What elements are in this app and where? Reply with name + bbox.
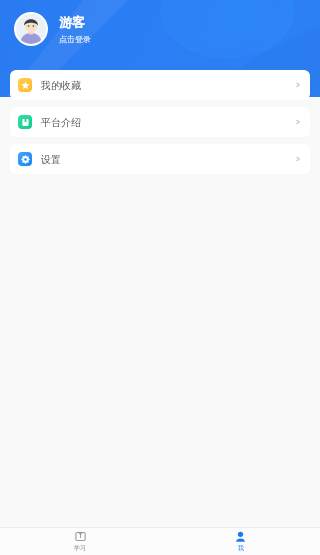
button[interactable]: 游客 bbox=[14, 12, 320, 46]
staticText: 设置 bbox=[41, 153, 61, 166]
staticText: 我的收藏 bbox=[41, 79, 81, 92]
button[interactable]: 我 bbox=[160, 531, 320, 552]
other: 我 bbox=[235, 531, 246, 542]
button[interactable]: 我的收藏 bbox=[10, 70, 310, 100]
button[interactable]: 学习 bbox=[0, 531, 160, 552]
button[interactable]: 平台介绍 bbox=[10, 107, 310, 137]
staticText: 点击登录 bbox=[59, 34, 91, 44]
staticText: 游客 bbox=[59, 14, 85, 30]
button[interactable]: 设置 bbox=[10, 144, 310, 174]
staticText: 平台介绍 bbox=[41, 116, 81, 129]
staticText: 我 bbox=[238, 544, 244, 552]
staticText: 学习 bbox=[74, 544, 86, 552]
other: 学习 bbox=[75, 531, 86, 542]
